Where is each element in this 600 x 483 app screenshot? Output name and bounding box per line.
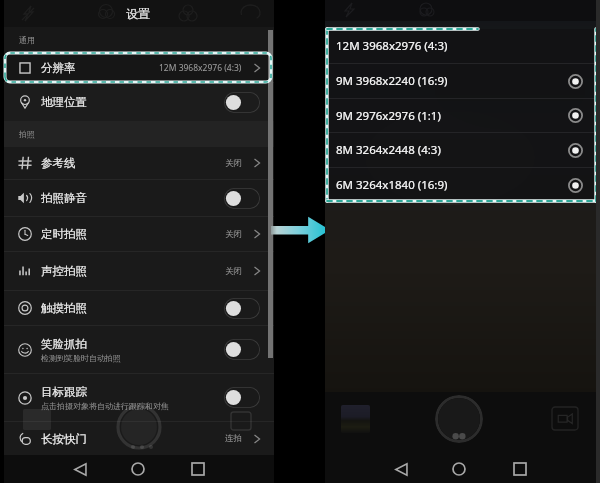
- staticText: 拍照: [19, 129, 35, 139]
- staticText: 关闭: [225, 229, 242, 240]
- button[interactable]: 声控拍照: [4, 252, 274, 290]
- staticText: 参考线: [41, 156, 76, 170]
- button[interactable]: 定时拍照: [4, 217, 274, 251]
- button[interactable]: Gallery: [341, 405, 370, 433]
- button[interactable]: Recents: [506, 455, 534, 483]
- button[interactable]: Back: [66, 455, 94, 483]
- staticText: 拍照静音: [41, 191, 87, 205]
- button[interactable]: Toggle 目标跟踪: [224, 387, 260, 408]
- button[interactable]: Toggle 笑脸抓拍: [224, 339, 260, 360]
- button[interactable]: 目标跟踪: [4, 374, 274, 421]
- staticText: 声控拍照: [41, 264, 87, 278]
- button[interactable]: Toggle 拍照静音: [224, 188, 260, 209]
- staticText: 关闭: [225, 266, 242, 277]
- button[interactable]: 分辨率: [4, 53, 274, 82]
- button[interactable]: Video mode: [552, 407, 578, 430]
- button[interactable]: 触摸拍照: [4, 291, 274, 325]
- button[interactable]: Home: [445, 455, 473, 483]
- button[interactable]: 12M 3968x2976 (4:3): [325, 29, 596, 63]
- button[interactable]: 参考线: [4, 147, 274, 179]
- staticText: 地理位置: [41, 95, 87, 109]
- button[interactable]: 9M 2976x2976 (1:1): [325, 99, 596, 132]
- staticText: 关闭: [225, 158, 242, 169]
- button[interactable]: 6M 3264x1840 (16:9): [325, 168, 596, 202]
- staticText: 触摸拍照: [41, 301, 87, 315]
- staticText: 设置: [126, 6, 150, 21]
- button[interactable]: Back: [387, 455, 415, 483]
- staticText: 连拍: [225, 433, 242, 444]
- button[interactable]: 拍照静音: [4, 180, 274, 216]
- button[interactable]: Home: [124, 455, 152, 483]
- staticText: 笑脸抓拍: [41, 337, 87, 351]
- staticText: 12M 3968x2976 (4:3): [159, 62, 242, 74]
- button[interactable]: 8M 3264x2448 (4:3): [325, 133, 596, 167]
- button[interactable]: 长按快门: [4, 422, 274, 455]
- button[interactable]: 地理位置: [4, 83, 274, 121]
- staticText: 通用: [19, 35, 35, 45]
- staticText: 6M 3264x1840 (16:9): [336, 177, 568, 193]
- staticText: 分辨率: [41, 61, 76, 75]
- button[interactable]: 9M 3968x2240 (16:9): [325, 64, 596, 98]
- staticText: 检测到笑脸时自动拍照: [41, 353, 121, 363]
- staticText: 9M 3968x2240 (16:9): [336, 73, 568, 89]
- staticText: 点击拍摄对象将自动进行跟踪和对焦: [41, 401, 169, 411]
- staticText: 9M 2976x2976 (1:1): [336, 108, 568, 124]
- button[interactable]: Toggle 地理位置: [224, 92, 260, 113]
- button[interactable]: 笑脸抓拍: [4, 326, 274, 373]
- staticText: 长按快门: [41, 432, 87, 446]
- staticText: 目标跟踪: [41, 385, 87, 399]
- staticText: 12M 3968x2976 (4:3): [336, 38, 583, 54]
- button[interactable]: Toggle 触摸拍照: [224, 298, 260, 319]
- button[interactable]: Shutter: [435, 395, 483, 443]
- staticText: 定时拍照: [41, 227, 87, 241]
- staticText: 8M 3264x2448 (4:3): [336, 142, 568, 158]
- button[interactable]: Recents: [184, 455, 212, 483]
